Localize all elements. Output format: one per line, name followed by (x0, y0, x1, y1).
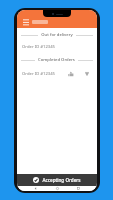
staticText: Order ID #12345 (22, 71, 55, 77)
button[interactable]: Home (54, 186, 61, 191)
staticText: Out for delivery (41, 32, 73, 38)
staticText: Completed Orders (38, 57, 75, 63)
button[interactable]: Recents (75, 186, 82, 191)
button[interactable]: Order ID #12345 (17, 43, 97, 51)
staticText: Accepting Orders (42, 177, 81, 183)
button[interactable]: Accepting Orders (17, 174, 97, 186)
button[interactable]: Thumbs up (66, 69, 76, 79)
button[interactable]: Open navigation menu (21, 17, 30, 26)
staticText: Order ID #12345 (22, 44, 55, 50)
button[interactable]: Thumbs down (82, 69, 92, 79)
button[interactable]: Back (32, 186, 39, 191)
button[interactable]: Order ID #12345 (17, 68, 97, 80)
